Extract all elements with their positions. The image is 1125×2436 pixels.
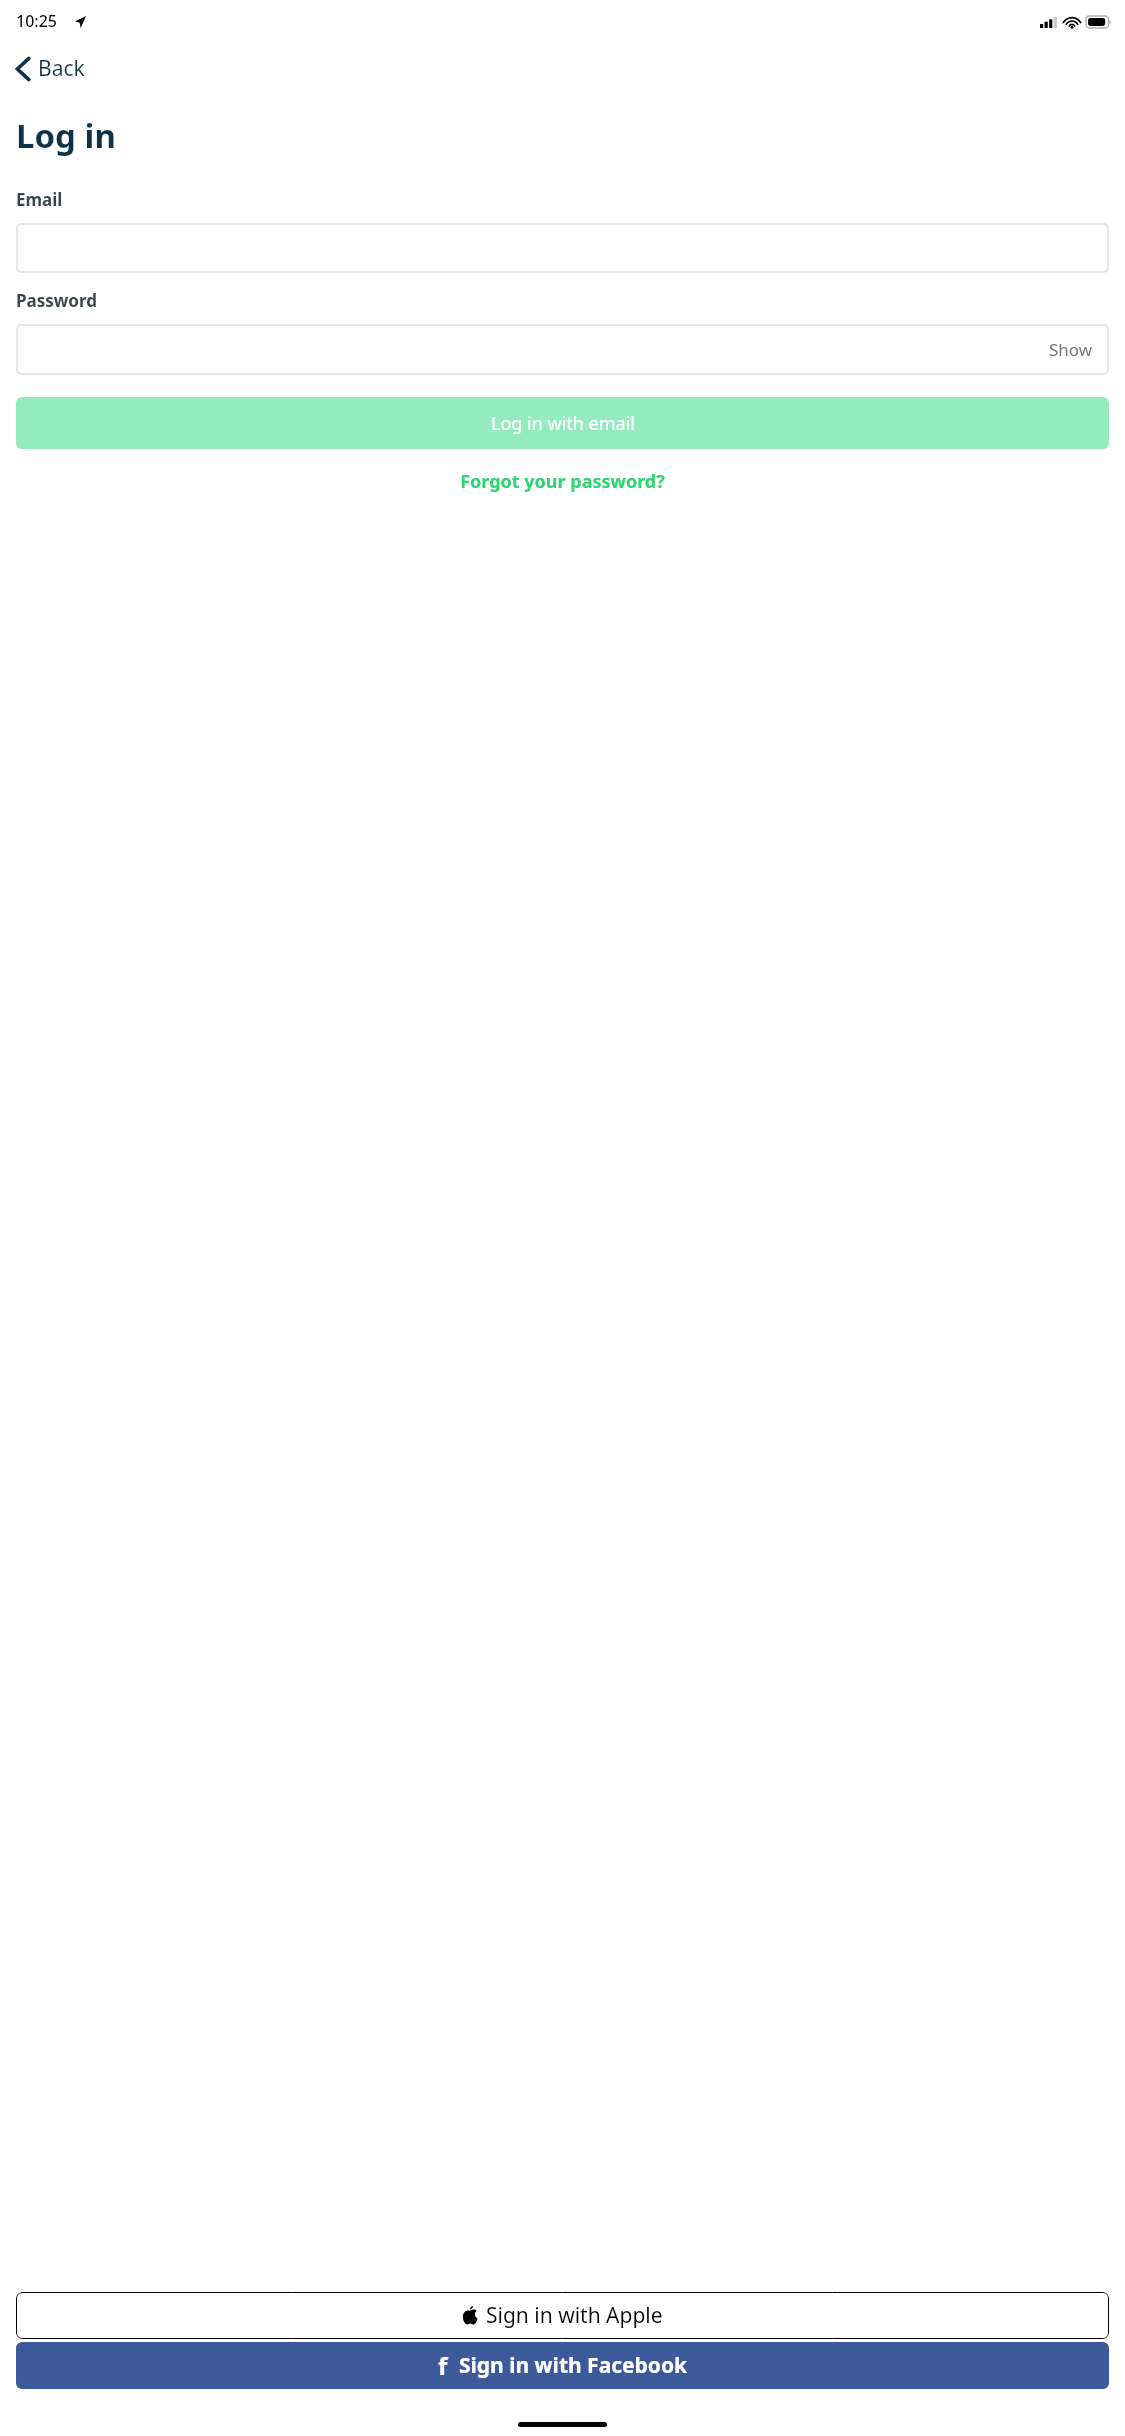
staticText: Show: [1049, 338, 1093, 361]
staticText: Forgot your password?: [460, 469, 665, 494]
staticText: Email: [16, 188, 63, 211]
button[interactable]: Back: [10, 44, 91, 93]
staticText: Sign in with Apple: [486, 2301, 663, 2330]
staticText: Sign in with Facebook: [459, 2351, 688, 2380]
button[interactable]: Log in with email: [16, 397, 1109, 449]
button[interactable]: Forgot your password?: [0, 462, 1125, 501]
staticText: Log in with email: [491, 411, 635, 436]
staticText: f: [438, 2349, 448, 2382]
button[interactable]: f: [16, 2342, 1109, 2389]
staticText: 10:25: [16, 10, 57, 32]
staticText: Back: [38, 54, 85, 83]
button[interactable]: [16, 223, 1109, 273]
staticText: Log in: [16, 113, 116, 158]
button[interactable]: Show: [1033, 324, 1109, 375]
staticText: Password: [16, 289, 97, 312]
button[interactable]: Sign in with Apple: [16, 2292, 1109, 2339]
